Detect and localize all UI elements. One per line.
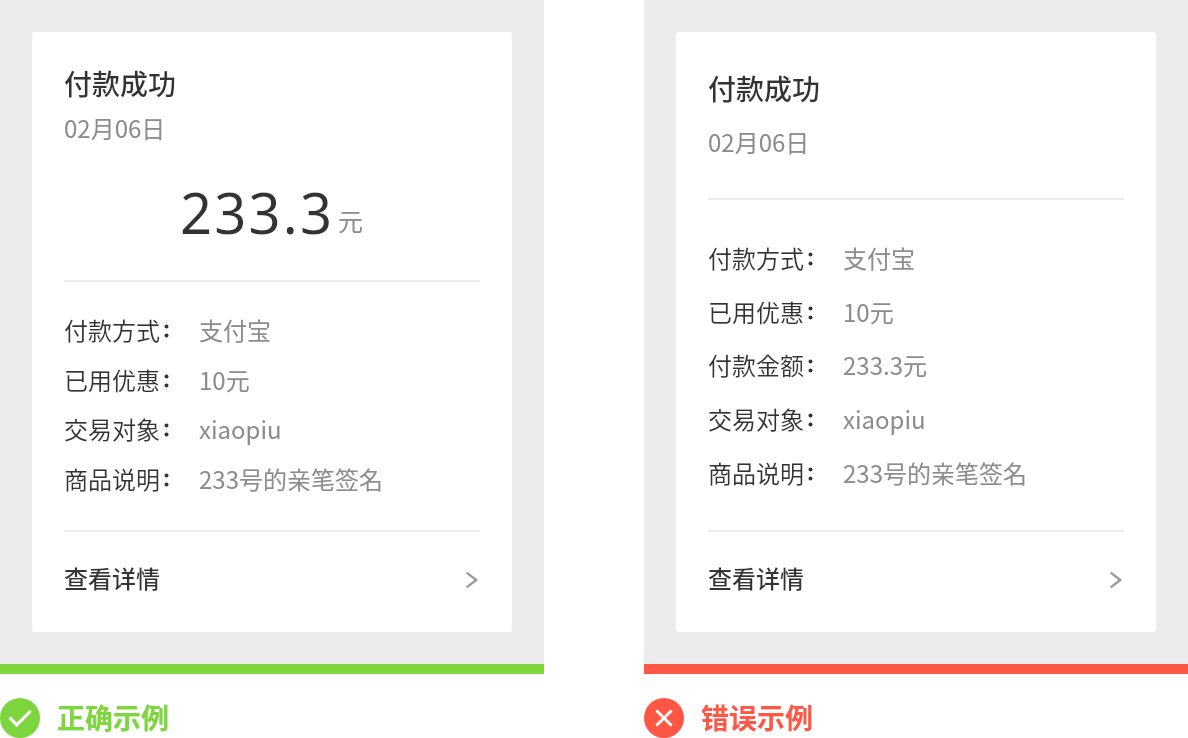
button[interactable]: 查看详情 <box>64 551 480 609</box>
staticText: 查看详情 <box>708 560 804 595</box>
staticText: 02月06日 <box>708 124 810 159</box>
staticText: xiaopiu <box>843 401 926 436</box>
staticText: 支付宝 <box>199 312 271 347</box>
staticText: 交易对象 <box>708 401 804 436</box>
staticText: 商品说明 <box>708 455 804 490</box>
staticText: 支付宝 <box>843 240 915 275</box>
staticText: 233.3 <box>180 174 335 250</box>
staticText: 商品说明 <box>64 461 160 496</box>
staticText: 正确示例 <box>57 697 170 738</box>
staticText: 错误示例 <box>701 697 814 738</box>
staticText: xiaopiu <box>199 411 282 446</box>
staticText: 元 <box>338 202 364 238</box>
staticText: 已用优惠 <box>708 294 804 329</box>
staticText: 交易对象 <box>64 411 160 446</box>
staticText: 02月06日 <box>64 110 166 145</box>
staticText: 233号的亲笔签名 <box>843 455 1027 490</box>
staticText: 233.3元 <box>843 347 927 382</box>
staticText: 付款成功 <box>708 68 821 109</box>
staticText: 付款成功 <box>64 63 177 104</box>
other: View details <box>466 570 480 590</box>
staticText: 233号的亲笔签名 <box>199 461 383 496</box>
staticText: 查看详情 <box>64 560 160 595</box>
staticText: 10元 <box>843 294 894 329</box>
other: View details <box>1110 570 1124 590</box>
button[interactable]: Wrong example <box>644 698 684 738</box>
staticText: 付款方式 <box>708 240 804 275</box>
button[interactable]: Correct example <box>0 698 40 738</box>
staticText: 付款金额 <box>708 347 804 382</box>
staticText: 已用优惠 <box>64 362 160 397</box>
staticText: 付款方式 <box>64 312 160 347</box>
button[interactable]: 查看详情 <box>708 551 1124 609</box>
staticText: 10元 <box>199 362 250 397</box>
